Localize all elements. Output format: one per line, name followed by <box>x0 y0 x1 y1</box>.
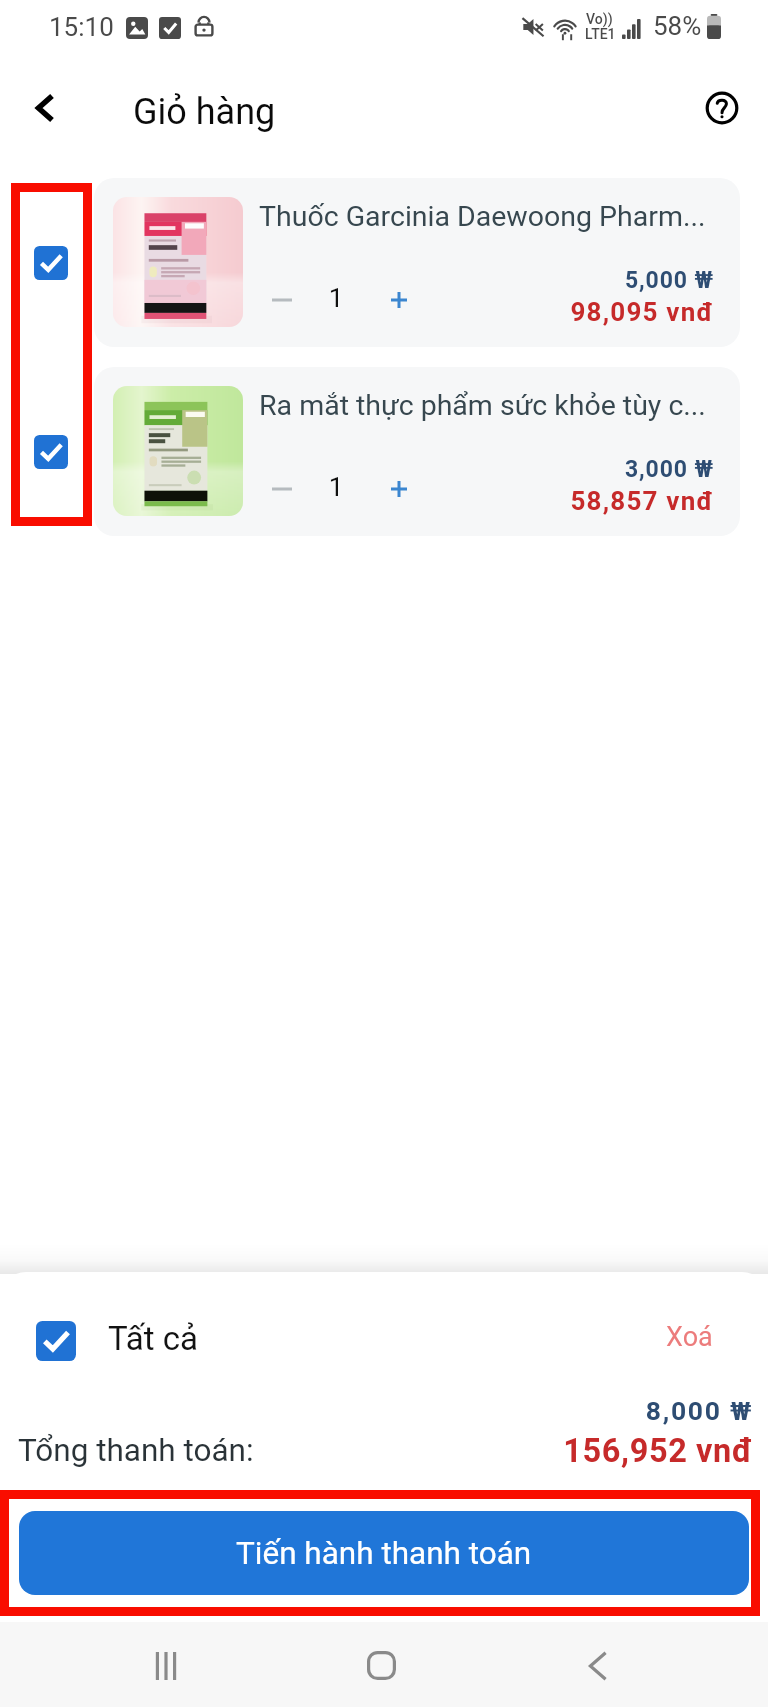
staticText: Xoá <box>666 1321 713 1353</box>
button[interactable]: Increase quantity <box>377 467 421 511</box>
button[interactable]: Select Ra mắt thực phẩm sức khỏe tùy c <box>16 417 86 487</box>
staticText: Tiến hành thanh toán <box>236 1535 532 1572</box>
button[interactable]: Xoá <box>646 1312 750 1364</box>
staticText: 98,095 vnđ <box>394 297 714 327</box>
button[interactable]: Increase quantity <box>377 278 421 322</box>
button[interactable]: Home <box>351 1635 411 1695</box>
staticText: 15:10 <box>49 12 114 42</box>
button[interactable]: Ra mắt thực phẩm sức khỏe tùy c... <box>94 367 740 536</box>
staticText: 156,952 vnđ <box>400 1432 753 1470</box>
button[interactable]: Back <box>16 78 76 138</box>
button[interactable]: Select all <box>36 1321 76 1361</box>
staticText: 5,000 ₩ <box>394 267 714 294</box>
staticText: Giỏ hàng <box>133 91 276 133</box>
button[interactable]: Select Thuốc Garcinia Daewoong Pharm <box>16 228 86 298</box>
button[interactable]: Decrease quantity <box>260 467 304 511</box>
staticText: 58,857 vnđ <box>394 486 714 516</box>
button[interactable]: Back <box>568 1636 628 1696</box>
staticText: Ra mắt thực phẩm sức khỏe tùy c... <box>259 389 721 422</box>
staticText: 1 <box>316 472 356 502</box>
staticText: Thuốc Garcinia Daewoong Pharm... <box>259 200 721 233</box>
staticText: LTE1 <box>585 26 616 42</box>
staticText: 1 <box>316 283 356 313</box>
staticText: Tất cả <box>108 1319 199 1358</box>
button[interactable]: Recent apps <box>136 1636 196 1696</box>
staticText: 3,000 ₩ <box>394 456 714 483</box>
button[interactable]: Help <box>692 78 752 138</box>
staticText: Vo)) <box>586 11 613 27</box>
button[interactable]: Tiến hành thanh toán <box>19 1511 749 1595</box>
staticText: 58% <box>653 11 702 41</box>
staticText: Tổng thanh toán: <box>18 1432 254 1469</box>
button[interactable]: Thuốc Garcinia Daewoong Pharm... <box>94 178 740 347</box>
button[interactable]: Decrease quantity <box>260 278 304 322</box>
staticText: 8,000 ₩ <box>400 1395 753 1426</box>
